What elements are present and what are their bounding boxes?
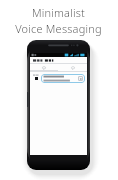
staticText: Voice Messaging [15,21,102,36]
button[interactable]: Play voice message [41,74,85,83]
button[interactable]: Messages tab [30,64,58,71]
staticText: Minimalist [32,5,85,20]
button[interactable]: Play voice message [78,76,83,81]
button[interactable] [30,57,87,64]
button[interactable]: Contacts tab [58,64,87,71]
